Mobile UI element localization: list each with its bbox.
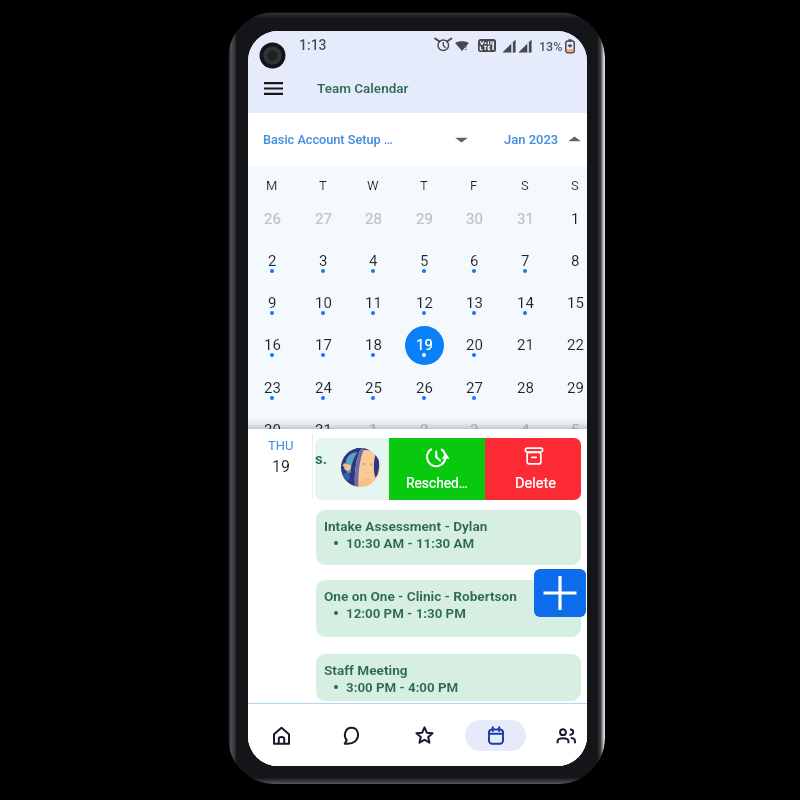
button[interactable]: Select calendar — [454, 132, 469, 147]
button[interactable]: Contacts — [535, 720, 587, 751]
staticText: One on One - Clinic - Robertson — [324, 588, 517, 604]
button[interactable]: 27 — [453, 367, 495, 409]
staticText: 4 — [521, 421, 530, 439]
button[interactable]: 28 — [352, 198, 394, 240]
staticText: 12:00 PM - 1:30 PM — [346, 606, 466, 622]
button[interactable]: 31 — [504, 198, 546, 240]
button[interactable]: 21 — [504, 324, 546, 366]
staticText: 4 — [369, 252, 378, 270]
staticText: 18 — [365, 336, 382, 354]
staticText: 3 — [319, 252, 328, 270]
staticText: 5 — [571, 421, 580, 439]
staticText: 20 — [466, 336, 483, 354]
button[interactable]: 31 — [302, 409, 344, 451]
staticText: 3:00 PM - 4:00 PM — [346, 680, 459, 696]
button[interactable]: 26 — [251, 198, 293, 240]
button[interactable]: 24 — [302, 367, 344, 409]
button[interactable]: 6 — [453, 240, 495, 282]
button[interactable]: s. — [315, 438, 389, 500]
staticText: 11 — [365, 294, 382, 312]
button[interactable]: 30 — [453, 198, 495, 240]
button[interactable]: Calendar — [465, 720, 526, 751]
button[interactable]: 8 — [554, 240, 587, 282]
staticText: 7 — [521, 252, 530, 270]
button[interactable]: Staff Meeting — [316, 654, 581, 701]
staticText: 27 — [315, 210, 332, 228]
button[interactable]: 28 — [504, 367, 546, 409]
button[interactable]: 15 — [554, 282, 587, 324]
staticText: 26 — [416, 379, 433, 397]
staticText: 30 — [466, 210, 483, 228]
staticText: 1 — [369, 421, 378, 439]
button[interactable]: 30 — [251, 409, 293, 451]
button[interactable]: 12 — [403, 282, 445, 324]
button[interactable]: 20 — [453, 324, 495, 366]
button[interactable]: 29 — [554, 367, 587, 409]
button[interactable]: 7 — [504, 240, 546, 282]
staticText: 2 — [420, 421, 429, 439]
staticText: 28 — [365, 210, 382, 228]
staticText: 17 — [315, 336, 332, 354]
staticText: 10:30 AM - 11:30 AM — [346, 536, 475, 552]
staticText: 6 — [470, 252, 479, 270]
staticText: 1 — [571, 210, 580, 228]
button[interactable]: 5 — [554, 409, 587, 451]
button[interactable]: Delete — [485, 438, 581, 500]
button[interactable]: 13 — [453, 282, 495, 324]
staticText: 14 — [517, 294, 534, 312]
button[interactable]: One on One - Clinic - Robertson — [316, 580, 581, 637]
staticText: 31 — [315, 421, 332, 439]
staticText: 8 — [571, 252, 580, 270]
button[interactable]: 2 — [251, 240, 293, 282]
button[interactable]: 23 — [251, 367, 293, 409]
button[interactable]: 26 — [403, 367, 445, 409]
staticText: 12 — [416, 294, 433, 312]
button[interactable]: Jan 2023 — [504, 132, 559, 147]
staticText: 9 — [268, 294, 277, 312]
button[interactable]: 11 — [352, 282, 394, 324]
button[interactable]: Collapse month — [567, 132, 582, 147]
staticText: Staff Meeting — [324, 662, 408, 678]
staticText: S — [571, 178, 579, 193]
button[interactable]: 16 — [251, 324, 293, 366]
button[interactable]: Home — [251, 720, 312, 751]
button[interactable]: 10 — [302, 282, 344, 324]
button[interactable]: 27 — [302, 198, 344, 240]
staticText: s. — [315, 450, 328, 468]
staticText: 24 — [315, 379, 332, 397]
button[interactable]: Chat — [321, 720, 382, 751]
staticText: 30 — [264, 421, 281, 439]
staticText: 3 — [470, 421, 479, 439]
button[interactable]: 3 — [302, 240, 344, 282]
button[interactable]: Favorites — [394, 720, 455, 751]
button[interactable]: 29 — [403, 198, 445, 240]
staticText: 25 — [365, 379, 382, 397]
button[interactable]: 9 — [251, 282, 293, 324]
staticText: 28 — [517, 379, 534, 397]
button[interactable]: 4 — [504, 409, 546, 451]
button[interactable]: Menu — [255, 70, 291, 106]
button[interactable]: Intake Assessment - Dylan — [316, 510, 581, 565]
button[interactable]: Resched… — [389, 438, 485, 500]
button[interactable]: 3 — [453, 409, 495, 451]
button[interactable]: Basic Account Setup … — [263, 132, 393, 147]
staticText: S — [521, 178, 529, 193]
button[interactable]: Add event — [534, 569, 586, 617]
button[interactable]: 1 — [352, 409, 394, 451]
staticText: T — [420, 178, 428, 193]
button[interactable]: 2 — [403, 409, 445, 451]
button[interactable]: 19 — [403, 324, 445, 366]
staticText: 22 — [567, 336, 584, 354]
staticText: 1:13 — [299, 37, 327, 53]
button[interactable]: 18 — [352, 324, 394, 366]
button[interactable]: 1 — [554, 198, 587, 240]
button[interactable]: 17 — [302, 324, 344, 366]
staticText: 10 — [315, 294, 332, 312]
button[interactable]: 4 — [352, 240, 394, 282]
button[interactable]: 22 — [554, 324, 587, 366]
staticText: 2 — [268, 252, 277, 270]
button[interactable]: 14 — [504, 282, 546, 324]
button[interactable]: 5 — [403, 240, 445, 282]
staticText: M — [266, 178, 278, 193]
button[interactable]: 25 — [352, 367, 394, 409]
